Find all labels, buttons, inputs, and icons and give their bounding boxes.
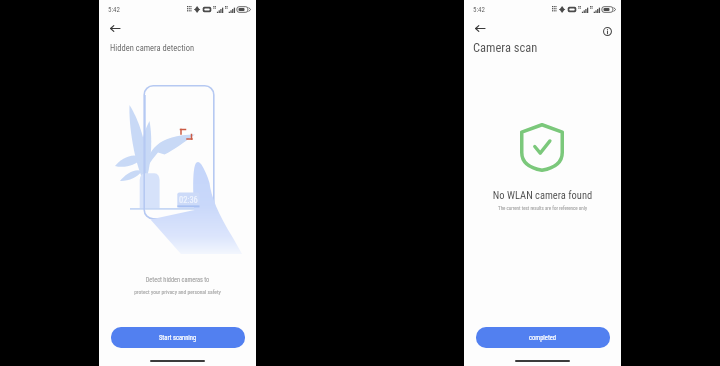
- staticText: Detect hidden cameras to: [99, 276, 256, 283]
- staticText: Camera scan: [473, 40, 538, 55]
- button[interactable]: Back: [469, 18, 490, 38]
- button[interactable]: completed: [476, 327, 610, 348]
- button[interactable]: Info: [597, 21, 618, 41]
- staticText: Start scanning: [159, 334, 197, 342]
- staticText: protect your privacy and personal safety: [99, 289, 256, 295]
- staticText: No WLAN camera found: [464, 189, 621, 201]
- staticText: 02:36: [179, 195, 198, 205]
- staticText: 5:42: [473, 6, 486, 14]
- button[interactable]: Back: [104, 18, 125, 38]
- staticText: The current test results are for referen…: [464, 205, 621, 211]
- button[interactable]: Start scanning: [111, 327, 245, 348]
- staticText: completed: [529, 334, 557, 342]
- staticText: 5:42: [108, 6, 121, 14]
- staticText: Hidden camera detection: [110, 43, 195, 53]
